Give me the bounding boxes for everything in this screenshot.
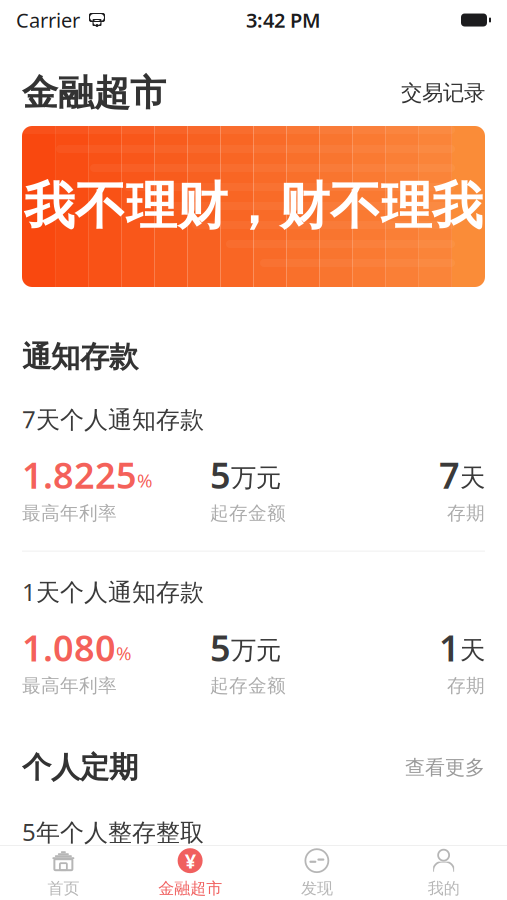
button[interactable]: ¥ [127,846,254,900]
staticText: 金融超市 [158,879,222,898]
staticText: 个人定期 [22,749,138,785]
staticText: 我不理财，财不理我 [24,175,483,238]
staticText: 起存金额 [210,674,286,697]
staticText: 5年个人整存整取 [22,816,204,848]
staticText: 存期 [447,502,485,525]
button[interactable]: 首页 [0,846,127,900]
staticText: 最高年利率 [22,502,117,525]
staticText: 7天个人通知存款 [22,403,204,435]
staticText: 金融超市 [22,71,166,115]
staticText: 3:42 PM [246,7,321,33]
staticText: 1天个人通知存款 [22,576,204,607]
staticText: 通知存款 [22,339,138,375]
staticText: 7 [439,451,460,499]
button[interactable]: 我不理财，财不理我 [22,126,485,287]
staticText: 发现 [301,879,333,898]
staticText: 1.8225 [22,451,137,499]
staticText: % [137,468,153,493]
button[interactable]: 查看更多 [391,747,485,788]
staticText: 最高年利率 [22,674,117,697]
staticText: 交易记录 [401,80,485,106]
staticText: 万元 [231,462,281,493]
staticText: 万元 [231,635,281,666]
staticText: Carrier [16,7,80,33]
staticText: ¥ [185,847,196,874]
staticText: 存期 [447,674,485,697]
staticText: 天 [460,635,485,666]
button[interactable]: 我的 [380,846,507,900]
button[interactable]: 交易记录 [387,70,485,116]
button[interactable]: 7天个人通知存款 [22,403,485,525]
button[interactable]: 发现 [253,846,380,900]
staticText: % [116,640,132,665]
staticText: 1 [439,623,460,671]
staticText: 5 [210,451,231,499]
staticText: 首页 [47,879,79,898]
staticText: 起存金额 [210,502,286,525]
staticText: 5 [210,623,231,671]
staticText: 查看更多 [405,755,485,780]
staticText: 天 [460,462,485,493]
staticText: 我的 [428,879,460,898]
staticText: 1.080 [22,623,116,671]
button[interactable]: 1天个人通知存款 [22,576,485,697]
